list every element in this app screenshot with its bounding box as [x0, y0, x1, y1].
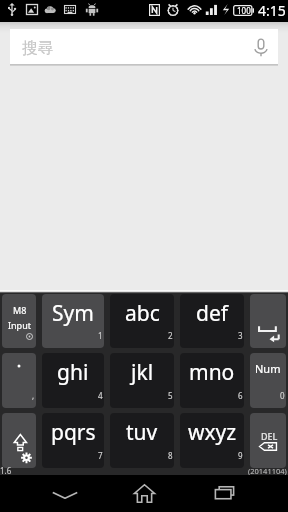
staticText: M8: [13, 304, 27, 316]
button[interactable]: ghi: [42, 353, 104, 408]
button[interactable]: Sym: [42, 294, 104, 348]
staticText: ghi: [57, 358, 89, 387]
button[interactable]: mno: [180, 353, 244, 408]
staticText: wxyz: [188, 418, 237, 447]
button[interactable]: M8 Input: [2, 294, 36, 348]
staticText: mno: [189, 358, 235, 387]
staticText: Sym: [52, 299, 94, 328]
staticText: 9: [238, 450, 243, 461]
staticText: 1: [98, 330, 103, 341]
staticText: 7: [98, 450, 103, 461]
button[interactable]: Home: [120, 475, 168, 512]
staticText: 3: [238, 330, 243, 341]
staticText: 2: [168, 330, 173, 341]
staticText: 8: [168, 450, 173, 461]
button[interactable]: pqrs: [42, 413, 104, 468]
staticText: 100: [237, 5, 251, 16]
button[interactable]: Voice search: [250, 36, 272, 58]
staticText: 0: [280, 390, 285, 401]
staticText: DEL: [261, 430, 278, 442]
staticText: ,: [32, 390, 35, 401]
button[interactable]: 搜尋: [10, 29, 278, 64]
button[interactable]: Num: [250, 353, 286, 408]
staticText: Num: [255, 361, 281, 376]
button[interactable]: def: [180, 294, 244, 348]
staticText: abc: [125, 299, 160, 328]
staticText: pqrs: [51, 418, 96, 447]
staticText: 4:15: [258, 1, 286, 20]
button[interactable]: Delete: [250, 413, 286, 468]
staticText: 5: [168, 390, 173, 401]
staticText: 1.6: [0, 465, 12, 476]
button[interactable]: tuv: [110, 413, 174, 468]
button[interactable]: jkl: [110, 353, 174, 408]
button[interactable]: wxyz: [180, 413, 244, 468]
staticText: 4: [98, 390, 103, 401]
staticText: tuv: [126, 418, 158, 447]
button[interactable]: abc: [110, 294, 174, 348]
staticText: 搜尋: [22, 38, 53, 58]
button[interactable]: Recent apps: [200, 475, 248, 512]
staticText: def: [196, 299, 228, 328]
staticText: 6: [238, 390, 243, 401]
staticText: (20141104): [248, 466, 287, 476]
button[interactable]: Enter: [250, 294, 286, 348]
staticText: Input: [8, 319, 31, 331]
button[interactable]: Shift and settings: [2, 413, 36, 468]
staticText: jkl: [131, 358, 154, 387]
button[interactable]: Hide keyboard: [41, 475, 89, 512]
button[interactable]: Punctuation: [2, 353, 36, 408]
